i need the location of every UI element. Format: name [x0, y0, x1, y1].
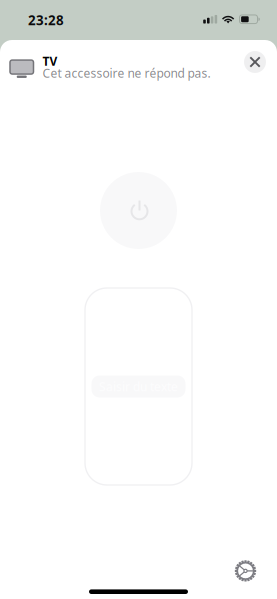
- button[interactable]: Réglages: [225, 554, 277, 587]
- button[interactable]: Fermer: [241, 48, 269, 76]
- staticText: TV: [42, 53, 57, 69]
- staticText: Cet accessoire ne répond pas.: [42, 65, 210, 81]
- button[interactable]: Marche/Arrêt: [100, 172, 177, 249]
- staticText: 23:28: [28, 11, 64, 29]
